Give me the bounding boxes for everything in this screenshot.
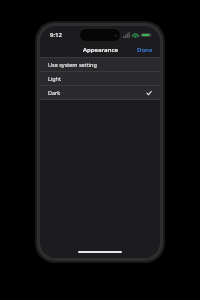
button[interactable]: Done <box>130 44 160 56</box>
button[interactable]: Dark <box>40 86 160 99</box>
staticText: Dark <box>48 89 61 96</box>
other: Selected <box>145 89 152 96</box>
staticText: Done <box>137 46 153 54</box>
staticText: Appearance <box>83 46 118 54</box>
staticText: Use system setting <box>48 61 97 68</box>
button[interactable]: Light <box>40 72 160 85</box>
button[interactable]: Use system setting <box>40 58 160 71</box>
staticText: 9:12 <box>50 31 62 39</box>
staticText: Light <box>48 75 62 82</box>
